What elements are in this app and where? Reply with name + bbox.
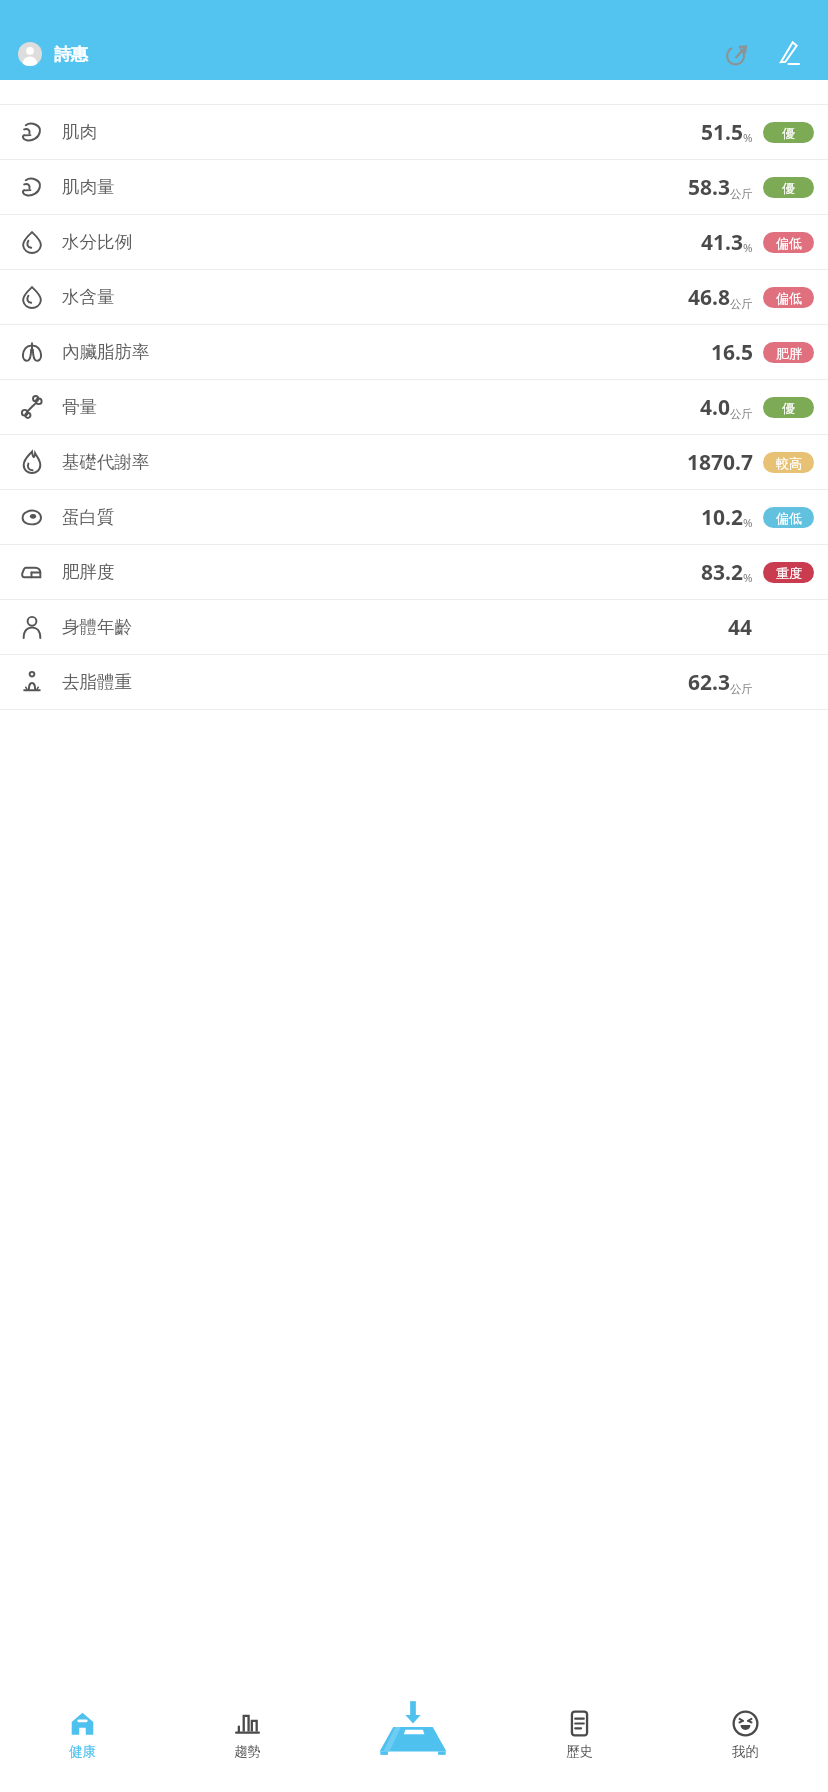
staticText: 詩惠 bbox=[54, 44, 88, 65]
staticText: 51.5 bbox=[701, 118, 743, 147]
button[interactable]: Share bbox=[719, 37, 753, 71]
button[interactable]: 詩惠 bbox=[18, 42, 88, 66]
button[interactable]: 去脂體重 bbox=[0, 655, 828, 709]
staticText: 我的 bbox=[732, 1743, 759, 1760]
staticText: 肌肉 bbox=[62, 121, 97, 143]
staticText: 基礎代謝率 bbox=[62, 451, 150, 473]
button[interactable]: 身體年齡 bbox=[0, 600, 828, 654]
button[interactable]: 我的 bbox=[662, 1696, 828, 1792]
staticText: 83.2 bbox=[701, 558, 743, 587]
button[interactable]: 骨量 bbox=[0, 380, 828, 434]
button[interactable]: 歷史 bbox=[496, 1696, 662, 1792]
staticText: 優 bbox=[782, 180, 795, 196]
staticText: 1870.7 bbox=[687, 448, 753, 477]
staticText: 水分比例 bbox=[62, 231, 132, 253]
staticText: 內臟脂肪率 bbox=[62, 341, 150, 363]
staticText: 公斤 bbox=[730, 682, 753, 696]
button[interactable]: Measure bbox=[330, 1696, 496, 1792]
staticText: 優 bbox=[782, 400, 795, 416]
staticText: 偏低 bbox=[776, 510, 802, 526]
button[interactable]: 水分比例 bbox=[0, 215, 828, 269]
staticText: 公斤 bbox=[730, 187, 753, 201]
staticText: % bbox=[743, 570, 753, 586]
staticText: 62.3 bbox=[688, 668, 730, 697]
staticText: 公斤 bbox=[730, 407, 753, 421]
staticText: 骨量 bbox=[62, 396, 97, 418]
button[interactable]: 內臟脂肪率 bbox=[0, 325, 828, 379]
staticText: 公斤 bbox=[730, 297, 753, 311]
staticText: 優 bbox=[782, 125, 795, 141]
staticText: 歷史 bbox=[566, 1743, 593, 1760]
staticText: 較高 bbox=[776, 455, 802, 471]
button[interactable]: 水含量 bbox=[0, 270, 828, 324]
staticText: 身體年齡 bbox=[62, 616, 132, 638]
button[interactable]: 肥胖度 bbox=[0, 545, 828, 599]
staticText: 肌肉量 bbox=[62, 176, 115, 198]
staticText: 4.0 bbox=[700, 393, 730, 422]
staticText: 趨勢 bbox=[234, 1743, 261, 1760]
staticText: 肥胖度 bbox=[62, 561, 115, 583]
staticText: 健康 bbox=[69, 1743, 96, 1760]
staticText: 重度 bbox=[776, 565, 802, 581]
staticText: 肥胖 bbox=[776, 345, 802, 361]
staticText: 去脂體重 bbox=[62, 671, 132, 693]
button[interactable]: 肌肉 bbox=[0, 105, 828, 159]
staticText: 蛋白質 bbox=[62, 506, 115, 528]
button[interactable]: 趨勢 bbox=[165, 1696, 330, 1792]
staticText: % bbox=[743, 130, 753, 146]
staticText: 水含量 bbox=[62, 286, 115, 308]
staticText: % bbox=[743, 515, 753, 531]
staticText: % bbox=[743, 240, 753, 256]
button[interactable]: 健康 bbox=[0, 1696, 165, 1792]
staticText: 16.5 bbox=[711, 338, 753, 367]
button[interactable]: 基礎代謝率 bbox=[0, 435, 828, 489]
staticText: 10.2 bbox=[701, 503, 743, 532]
button[interactable]: 肌肉量 bbox=[0, 160, 828, 214]
staticText: 44 bbox=[728, 613, 753, 642]
staticText: 46.8 bbox=[688, 283, 730, 312]
staticText: 58.3 bbox=[688, 173, 730, 202]
staticText: 41.3 bbox=[701, 228, 743, 257]
button[interactable]: Edit bbox=[772, 37, 806, 71]
button[interactable]: 蛋白質 bbox=[0, 490, 828, 544]
staticText: 偏低 bbox=[776, 290, 802, 306]
staticText: 偏低 bbox=[776, 235, 802, 251]
